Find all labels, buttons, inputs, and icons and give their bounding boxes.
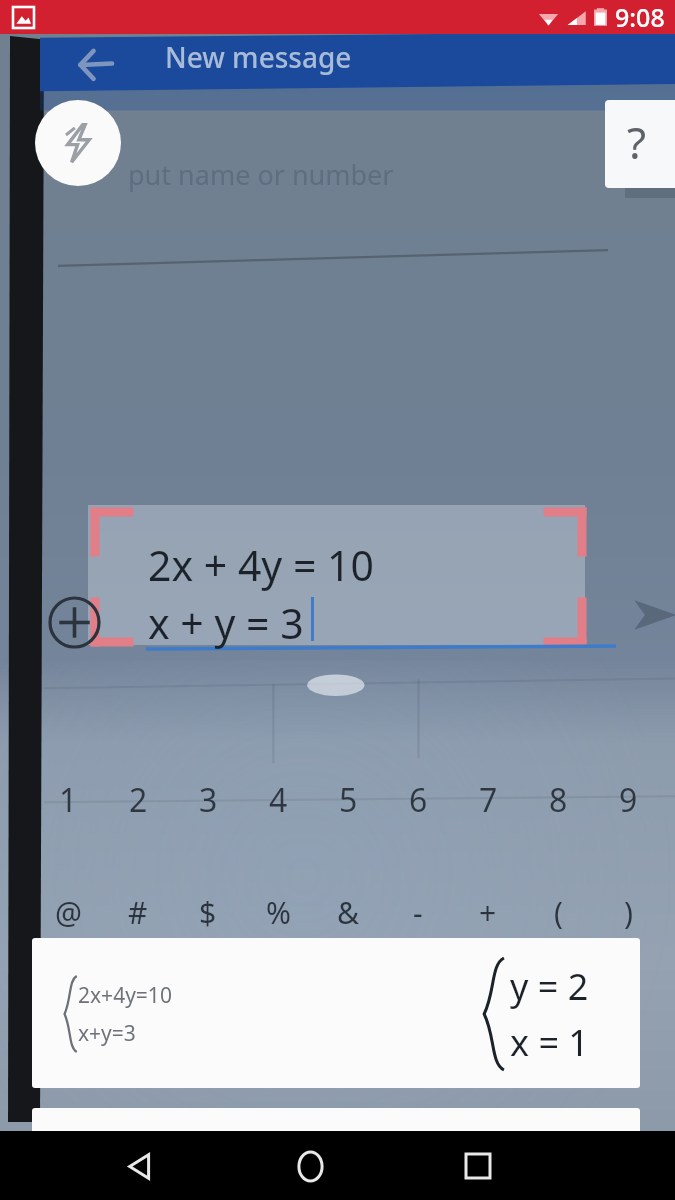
staticText: New message bbox=[165, 38, 352, 76]
staticText: $ bbox=[199, 892, 217, 933]
staticText: ? bbox=[627, 112, 647, 172]
staticText: x = 1 bbox=[510, 1018, 589, 1067]
button[interactable]: % bbox=[254, 888, 302, 936]
button[interactable]: Back bbox=[112, 1138, 168, 1194]
staticText: x+y=3 bbox=[78, 1019, 136, 1048]
button[interactable]: 1 bbox=[44, 776, 92, 824]
button[interactable] bbox=[32, 1108, 640, 1148]
button[interactable]: 4 bbox=[254, 776, 302, 824]
button[interactable]: Add attachment bbox=[47, 595, 102, 650]
staticText: + bbox=[479, 892, 497, 933]
button[interactable]: Help bbox=[605, 100, 675, 188]
button[interactable]: 8 bbox=[534, 776, 582, 824]
staticText: - bbox=[413, 892, 423, 933]
button[interactable]: - bbox=[394, 888, 442, 936]
staticText: ) bbox=[624, 892, 633, 933]
button[interactable]: 3 bbox=[184, 776, 232, 824]
button[interactable]: 5 bbox=[324, 776, 372, 824]
staticText: @ bbox=[55, 892, 82, 933]
button[interactable]: 2x+4y=10 bbox=[32, 938, 640, 1088]
staticText: % bbox=[266, 892, 291, 933]
staticText: x + y = 3 bbox=[148, 595, 304, 651]
button[interactable]: Send bbox=[632, 592, 675, 638]
staticText: 7 bbox=[479, 778, 498, 822]
staticText: 4 bbox=[269, 778, 288, 822]
button[interactable]: & bbox=[324, 888, 372, 936]
button[interactable]: Toggle flash bbox=[35, 100, 121, 186]
button[interactable]: @ bbox=[44, 888, 92, 936]
button[interactable]: 2 bbox=[114, 776, 162, 824]
staticText: & bbox=[337, 892, 359, 933]
staticText: 5 bbox=[339, 778, 358, 822]
button[interactable]: # bbox=[114, 888, 162, 936]
staticText: 9 bbox=[619, 778, 638, 822]
button[interactable]: Recent apps bbox=[450, 1138, 506, 1194]
button[interactable]: $ bbox=[184, 888, 232, 936]
staticText: 2x + 4y = 10 bbox=[148, 537, 374, 593]
staticText: y = 2 bbox=[510, 962, 589, 1011]
staticText: 6 bbox=[409, 778, 428, 822]
button[interactable]: 7 bbox=[464, 776, 512, 824]
staticText: ( bbox=[554, 892, 563, 933]
staticText: 1 bbox=[59, 778, 78, 822]
staticText: 2 bbox=[129, 778, 148, 822]
staticText: put name or number bbox=[128, 156, 394, 193]
staticText: 8 bbox=[549, 778, 568, 822]
staticText: 3 bbox=[199, 778, 218, 822]
button[interactable]: ) bbox=[604, 888, 652, 936]
staticText: 9:08 bbox=[615, 0, 665, 34]
button[interactable]: + bbox=[464, 888, 512, 936]
button[interactable]: Home bbox=[282, 1138, 338, 1194]
button[interactable]: 6 bbox=[394, 776, 442, 824]
staticText: # bbox=[128, 892, 148, 933]
button[interactable]: 9 bbox=[604, 776, 652, 824]
staticText: 2x+4y=10 bbox=[78, 981, 172, 1010]
button[interactable]: ( bbox=[534, 888, 582, 936]
